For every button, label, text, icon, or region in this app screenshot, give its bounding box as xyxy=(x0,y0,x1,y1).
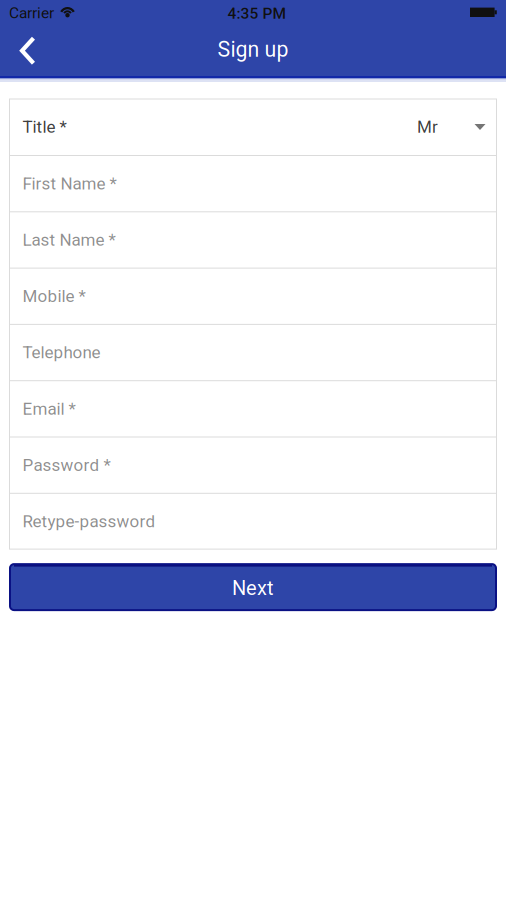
staticText: Title * xyxy=(22,117,66,137)
button[interactable]: Last Name * xyxy=(9,212,496,268)
staticText: Sign up xyxy=(217,37,288,62)
button[interactable]: Email * xyxy=(9,381,496,436)
staticText: Mr xyxy=(417,117,438,137)
staticText: Telephone xyxy=(22,343,100,362)
staticText: Carrier xyxy=(9,4,54,22)
staticText: Last Name * xyxy=(22,230,115,250)
button[interactable]: First Name * xyxy=(9,156,496,211)
staticText: 4:35 PM xyxy=(227,4,286,22)
staticText: Next xyxy=(232,576,274,600)
button[interactable]: Title * xyxy=(9,99,496,155)
button[interactable]: Telephone xyxy=(9,325,496,380)
button[interactable]: Mobile * xyxy=(9,269,496,324)
staticText: Retype-password xyxy=(22,511,155,531)
staticText: Password * xyxy=(22,455,110,475)
button[interactable]: Back xyxy=(0,26,35,78)
staticText: First Name * xyxy=(22,174,116,194)
button[interactable]: Retype-password xyxy=(9,494,496,549)
button[interactable]: Next xyxy=(10,564,496,610)
button[interactable]: Password * xyxy=(9,437,496,493)
staticText: Mobile * xyxy=(22,286,85,306)
staticText: Email * xyxy=(22,399,75,419)
